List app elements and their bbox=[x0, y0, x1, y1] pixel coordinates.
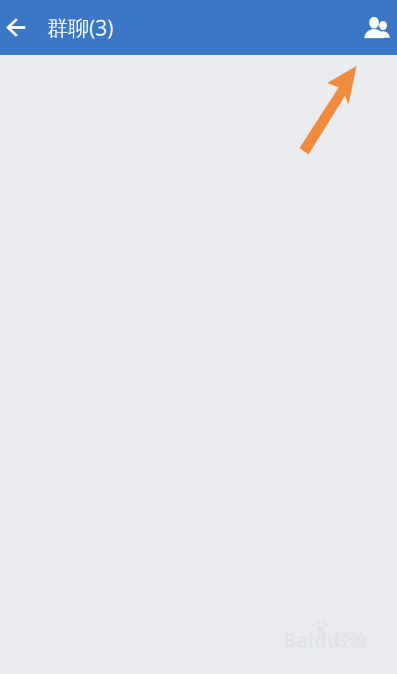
button[interactable]: Back bbox=[0, 0, 31, 55]
button[interactable]: Group members bbox=[357, 0, 397, 55]
staticText: 群聊(3) bbox=[47, 13, 113, 42]
staticText: 经验 bbox=[333, 630, 367, 651]
button[interactable]: 群聊(3) bbox=[47, 0, 113, 54]
staticText: Baidu bbox=[283, 626, 340, 653]
